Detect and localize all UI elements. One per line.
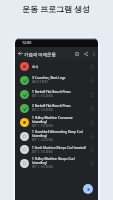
staticText: 12:00 bbox=[22, 40, 32, 45]
staticText: SET 1 - 5 X 20 KG bbox=[32, 124, 53, 128]
button[interactable]: 3 Crunches, Bent Legs bbox=[15, 73, 98, 87]
button[interactable]: 1 Barbell Flat Bench Press bbox=[15, 87, 98, 101]
button[interactable]: Share bbox=[81, 47, 90, 60]
staticText: 3 Crunches, Bent Legs bbox=[32, 76, 66, 80]
staticText: 운동 프로그램 생성 bbox=[22, 3, 91, 14]
button[interactable]: 1 Scott Machine Biceps Curl (seated) bbox=[15, 143, 98, 156]
staticText: SET 1 - 5 X 20 KG bbox=[32, 150, 53, 154]
button[interactable]: More options bbox=[90, 47, 98, 60]
staticText: SET 2 - 5 X 20 KG bbox=[32, 108, 53, 112]
staticText: 40S X 3 SETS bbox=[32, 80, 48, 84]
button[interactable]: 1 Dumbbell Alternating Bicep Curl (stand… bbox=[15, 129, 98, 143]
staticText: SET 1 - 5 X 20 KG bbox=[32, 165, 53, 169]
button[interactable]: 휴식 bbox=[15, 60, 98, 73]
staticText: 2 Barbell Flat Bench Press bbox=[32, 104, 71, 108]
staticText: 휴식 bbox=[32, 65, 39, 69]
staticText: SET 1 - 5 X 20 KG bbox=[32, 138, 53, 142]
button[interactable]: 1 Pulley Machine Crossover (standing) bbox=[15, 115, 98, 129]
button[interactable]: Save bbox=[72, 47, 81, 60]
button[interactable]: 2 Barbell Flat Bench Press bbox=[15, 101, 98, 115]
button[interactable]: 1 Pulley Machine Biceps Curl (standing) bbox=[15, 156, 98, 170]
staticText: 1 Pulley Machine Biceps Curl (standing) bbox=[32, 157, 88, 165]
staticText: 가슴과 어깨운동 bbox=[24, 51, 71, 57]
staticText: 1 Barbell Flat Bench Press bbox=[32, 90, 71, 94]
staticText: SET 1 - 5 X 20 KG bbox=[32, 94, 53, 98]
staticText: 1 Scott Machine Biceps Curl (seated) bbox=[32, 146, 87, 150]
staticText: 1 Pulley Machine Crossover (standing) bbox=[32, 116, 88, 124]
button[interactable]: Back bbox=[15, 47, 25, 60]
staticText: 1 Dumbbell Alternating Bicep Curl (stand… bbox=[32, 130, 88, 138]
button[interactable]: Start workout bbox=[83, 184, 93, 194]
